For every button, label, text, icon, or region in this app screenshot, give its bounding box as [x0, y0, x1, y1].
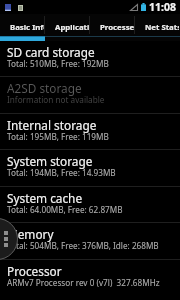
- button[interactable]: A2SD storage: [0, 77, 180, 114]
- button[interactable]: System storage: [0, 150, 180, 187]
- staticText: A2SD storage: [7, 80, 82, 96]
- button[interactable]: Fast scroll: [0, 218, 18, 260]
- staticText: Information not available: [7, 94, 105, 105]
- staticText: System cache: [7, 190, 83, 206]
- staticText: Memory: [7, 226, 54, 242]
- staticText: Total: 194MB, Free: 14.93MB: [7, 167, 116, 178]
- button[interactable]: Processes: [90, 14, 135, 36]
- button[interactable]: Internal storage: [0, 114, 180, 150]
- staticText: Total: 504MB, Free: 376MB, Idle: 268MB: [7, 240, 159, 251]
- staticText: System storage: [7, 153, 93, 169]
- staticText: Total: 64.00MB, Free: 62.87MB: [7, 204, 123, 215]
- staticText: Processes: [100, 22, 134, 33]
- button[interactable]: System cache: [0, 187, 180, 223]
- button[interactable]: Memory: [0, 223, 180, 260]
- staticText: Basic Information: [10, 22, 44, 33]
- staticText: Applications: [55, 22, 89, 33]
- button[interactable]: Net Stats: [135, 14, 180, 36]
- button[interactable]: Applications: [45, 14, 90, 36]
- button[interactable]: SD card storage: [0, 41, 180, 77]
- button[interactable]: Processor: [0, 260, 180, 296]
- staticText: Total: 510MB, Free: 192MB: [7, 58, 109, 69]
- staticText: Total: 195MB, Free: 119MB: [7, 131, 109, 142]
- staticText: Processor: [7, 263, 62, 279]
- staticText: Net Stats: [145, 22, 179, 33]
- staticText: Internal storage: [7, 117, 97, 133]
- staticText: ARMv7 Processor rev 0 (v7l) 327.68MHz: [7, 277, 160, 288]
- staticText: SD card storage: [7, 44, 95, 60]
- button[interactable]: Basic Information: [0, 14, 45, 36]
- staticText: 11:08: [149, 0, 176, 14]
